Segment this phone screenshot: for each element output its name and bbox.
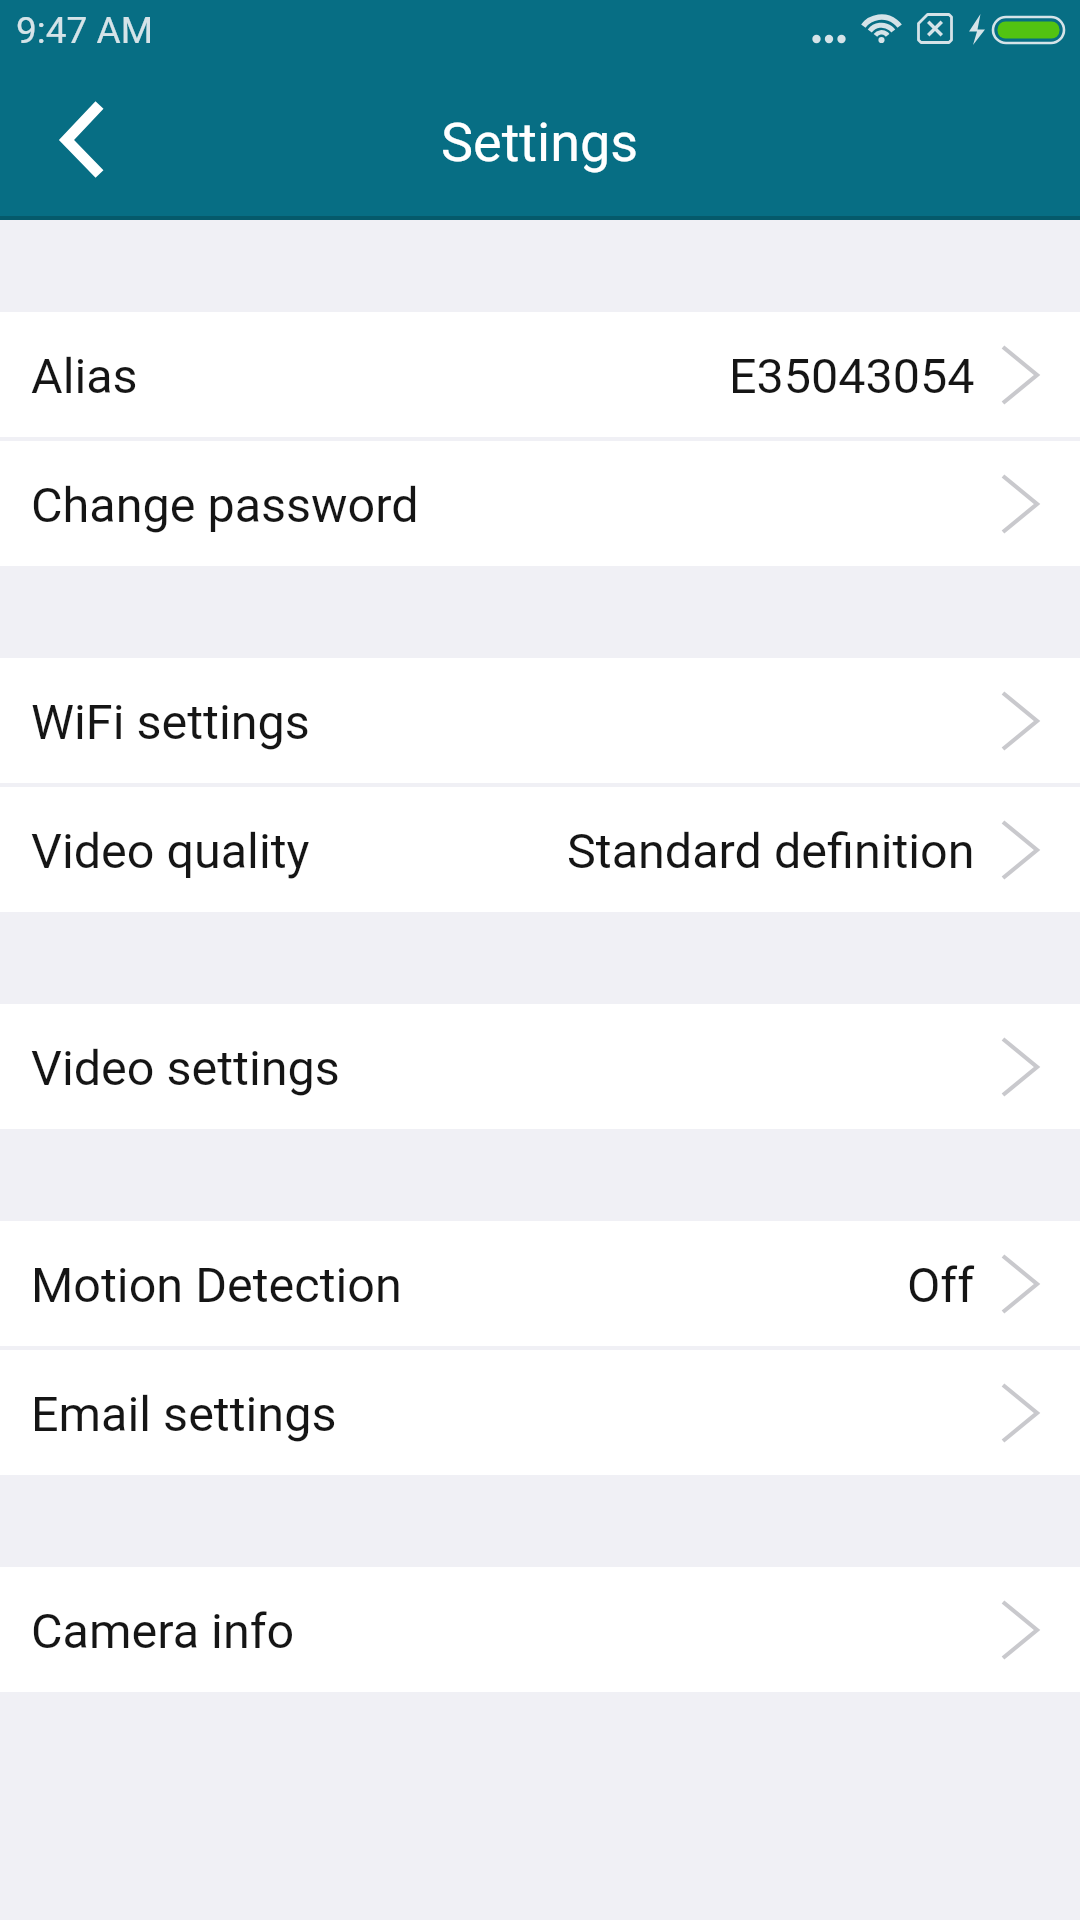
staticText: Video settings: [31, 1040, 340, 1097]
staticText: Off: [907, 1257, 975, 1314]
staticText: Camera info: [31, 1603, 295, 1660]
staticText: Video quality: [31, 823, 310, 880]
staticText: Motion Detection: [31, 1257, 402, 1314]
staticText: 9:47 AM: [16, 9, 153, 52]
staticText: Change password: [31, 477, 419, 534]
staticText: WiFi settings: [31, 694, 310, 751]
staticText: E35043054: [729, 348, 975, 405]
staticText: Standard definition: [567, 823, 975, 880]
staticText: Alias: [31, 348, 138, 405]
staticText: Settings: [441, 111, 639, 174]
staticText: Email settings: [31, 1386, 337, 1443]
